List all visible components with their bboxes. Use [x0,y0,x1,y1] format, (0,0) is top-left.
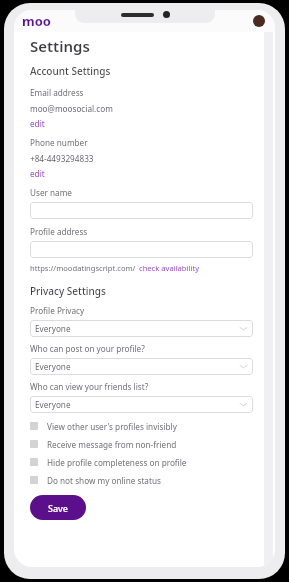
staticText: Phone number [30,137,88,148]
staticText: Save [48,502,69,514]
staticText: moo [22,12,51,30]
staticText: Everyone [35,323,71,334]
staticText: User name [30,187,72,198]
button[interactable]: Hide profile completeness on profile [30,453,253,471]
button[interactable] [30,202,253,219]
button[interactable]: edit [30,168,45,179]
staticText: Who can post on your profile? [30,343,145,354]
staticText: Profile Privacy [30,305,85,316]
button[interactable] [30,241,253,258]
button[interactable]: View other user's profiles invisibly [30,417,253,435]
staticText: Privacy Settings [30,284,106,298]
button[interactable]: Everyone [30,358,253,375]
staticText: Hide profile completeness on profile [47,457,187,468]
staticText: +84-4493294833 [30,153,94,164]
staticText: Profile address [30,226,88,237]
staticText: edit [30,118,45,129]
staticText: Account Settings [30,64,111,78]
staticText: Who can view your friends list? [30,381,149,392]
staticText: Everyone [35,399,71,410]
staticText: Settings [30,36,90,56]
button[interactable]: Do not show my online status [30,471,253,489]
button[interactable]: check availability [139,263,200,273]
staticText: moo@moosocial.com [30,103,113,114]
button[interactable]: Everyone [30,396,253,413]
button[interactable]: Profile [253,15,265,27]
staticText: Everyone [35,361,71,372]
staticText: Receive message from non-friend [47,439,177,450]
staticText: https://moodatingscript.com/ [30,263,136,273]
button[interactable]: Everyone [30,320,253,337]
staticText: Email address [30,87,84,98]
staticText: View other user's profiles invisibly [47,421,177,432]
button[interactable]: Save [30,495,86,520]
button[interactable]: Receive message from non-friend [30,435,253,453]
staticText: edit [30,168,45,179]
staticText: Do not show my online status [47,475,161,486]
staticText: check availability [139,263,200,273]
button[interactable]: edit [30,118,45,129]
